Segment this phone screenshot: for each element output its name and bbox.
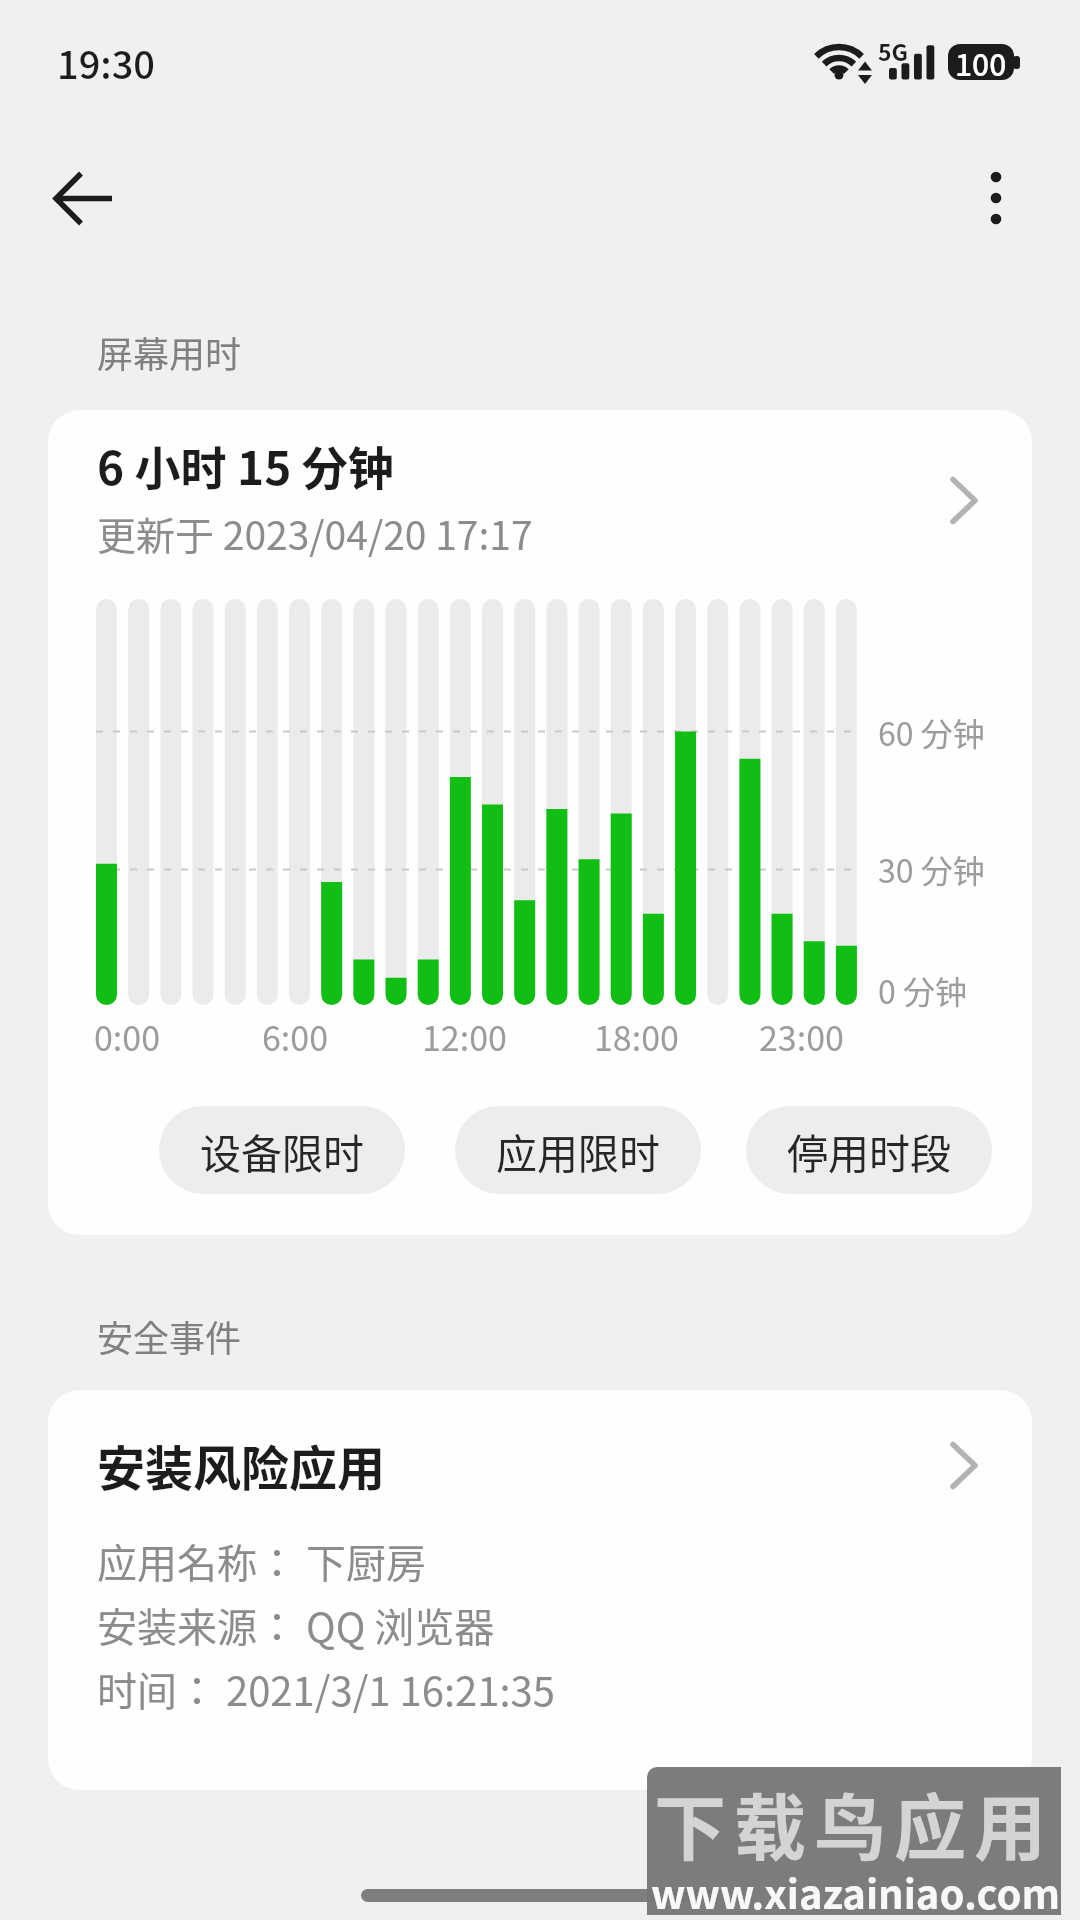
staticText: 0 分钟 (878, 967, 967, 1013)
staticText: 19:30 (57, 35, 155, 90)
staticText: 屏幕用时 (97, 326, 242, 378)
staticText: 应用名称： 下厨房 (97, 1532, 426, 1590)
button[interactable] (48, 410, 1032, 1235)
staticText: 下载鸟应用 (654, 1770, 1055, 1874)
button[interactable]: 应用限时 (455, 1106, 701, 1194)
staticText: 5G (878, 34, 909, 67)
staticText: 时间： 2021/3/1 16:21:35 (97, 1660, 555, 1718)
staticText: 6:00 (262, 1012, 329, 1061)
staticText: 23:00 (759, 1012, 844, 1061)
staticText: www.xiazainiao.com (651, 1863, 1061, 1920)
staticText: 30 分钟 (878, 846, 985, 892)
staticText: 100 (955, 41, 1007, 84)
button[interactable] (956, 158, 1036, 238)
staticText: 18:00 (594, 1012, 679, 1061)
staticText: 设备限时 (200, 1121, 364, 1180)
button[interactable]: 设备限时 (159, 1106, 405, 1194)
staticText: 安全事件 (97, 1310, 242, 1362)
button[interactable] (40, 160, 120, 240)
staticText: 12:00 (422, 1012, 507, 1061)
staticText: 安装来源： QQ 浏览器 (97, 1596, 495, 1654)
button[interactable] (48, 1390, 1032, 1790)
staticText: 6 小时 15 分钟 (97, 432, 394, 499)
staticText: 更新于 2023/04/20 17:17 (97, 505, 533, 561)
staticText: 60 分钟 (878, 709, 985, 755)
staticText: 安装风险应用 (97, 1430, 386, 1500)
staticText: 应用限时 (496, 1121, 660, 1180)
button[interactable]: 停用时段 (746, 1106, 992, 1194)
staticText: 停用时段 (787, 1121, 951, 1180)
staticText: 0:00 (94, 1012, 161, 1061)
